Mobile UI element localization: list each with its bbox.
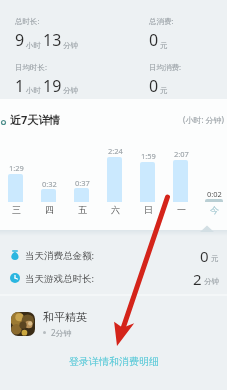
staticText: 1 — [15, 75, 25, 96]
staticText: 和平精英 — [43, 310, 87, 324]
staticText: 元 — [160, 86, 168, 95]
staticText: 总消费: — [149, 16, 174, 26]
staticText: 三 — [12, 204, 21, 215]
staticText: 2:24 — [108, 146, 123, 156]
staticText: 元 — [211, 254, 219, 263]
staticText: 2分钟 — [51, 327, 72, 338]
staticText: 9 — [15, 29, 25, 51]
staticText: 分钟 — [63, 86, 78, 95]
staticText: 分钟 — [63, 41, 78, 50]
staticText: 六 — [111, 204, 120, 215]
staticText: 0:32 — [42, 179, 57, 189]
button[interactable]: 当天游戏总时长: — [10, 269, 219, 287]
staticText: 近7天详情 — [10, 112, 61, 127]
staticText: 日 — [144, 204, 153, 215]
staticText: 登录详情和消费明细 — [69, 355, 159, 368]
button[interactable]: 当天消费总金额: — [10, 246, 219, 264]
staticText: 当天消费总金额: — [25, 249, 95, 262]
staticText: 今 — [210, 204, 219, 215]
staticText: 小时 — [26, 41, 41, 50]
staticText: 13 — [43, 29, 62, 51]
staticText: (小时: 分钟) — [183, 114, 225, 125]
staticText: 0:02 — [207, 189, 222, 199]
staticText: 0 — [200, 246, 209, 264]
staticText: 一 — [177, 204, 186, 215]
staticText: 元 — [160, 41, 168, 50]
staticText: 小时 — [26, 86, 41, 95]
staticText: 2:07 — [174, 149, 189, 159]
staticText: 总时长: — [15, 16, 40, 26]
staticText: 1:29 — [9, 163, 24, 173]
staticText: 0:37 — [75, 178, 90, 188]
staticText: 日均消费: — [149, 62, 182, 72]
staticText: 分钟 — [204, 277, 219, 286]
button[interactable]: 和平精英 — [11, 307, 219, 341]
staticText: 0 — [149, 29, 159, 51]
staticText: 当天游戏总时长: — [25, 272, 95, 285]
button[interactable]: 登录详情和消费明细 — [0, 350, 227, 372]
staticText: 19 — [43, 75, 62, 96]
staticText: 0 — [149, 75, 159, 96]
staticText: 日均时长: — [15, 62, 48, 72]
staticText: 五 — [78, 204, 87, 215]
staticText: 1:59 — [141, 151, 156, 161]
staticText: 四 — [45, 204, 54, 215]
staticText: 2 — [193, 269, 202, 287]
